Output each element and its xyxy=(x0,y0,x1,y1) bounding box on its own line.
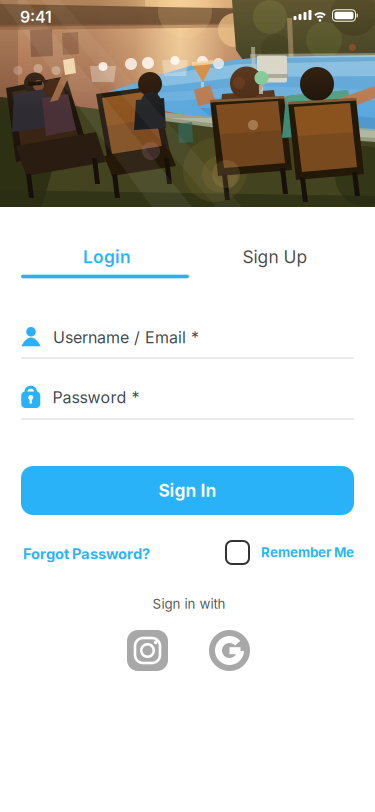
staticText: Remember Me xyxy=(261,545,354,560)
staticText: Forgot Password? xyxy=(23,545,150,563)
button[interactable]: Sign in with Instagram xyxy=(127,630,168,671)
button[interactable]: Remember Me xyxy=(174,541,354,564)
button[interactable]: Username / Email xyxy=(21,316,354,358)
button[interactable]: Sign In xyxy=(21,466,354,515)
staticText: 9:41 xyxy=(20,8,52,26)
button[interactable]: Password xyxy=(21,376,354,418)
staticText: Sign In xyxy=(158,480,216,501)
staticText: Sign in with xyxy=(152,596,225,612)
staticText: Password * xyxy=(52,388,139,407)
button[interactable]: Forgot Password? xyxy=(23,545,203,563)
button[interactable]: Sign in with Google xyxy=(209,630,250,671)
staticText: Sign Up xyxy=(242,247,307,267)
staticText: Login xyxy=(83,247,131,267)
button[interactable]: Sign Up xyxy=(192,237,358,277)
button[interactable]: Login xyxy=(24,237,190,277)
staticText: Username / Email * xyxy=(53,328,199,347)
